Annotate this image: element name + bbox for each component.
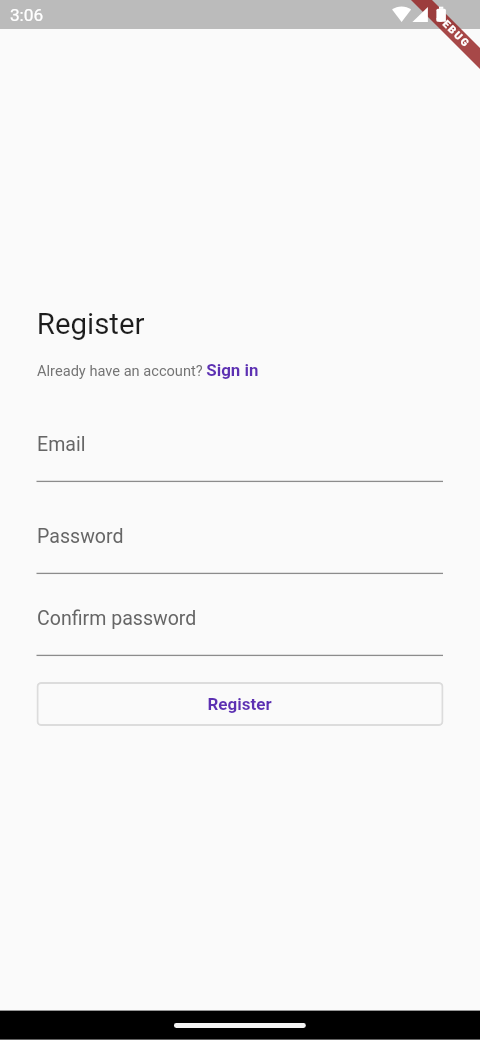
- staticText: DEBUG: [435, 11, 473, 50]
- staticText: Password: [37, 525, 124, 548]
- staticText: Already have an account? Sign in: [37, 360, 259, 380]
- button[interactable]: Confirm password: [36, 599, 443, 661]
- staticText: Register: [207, 694, 272, 714]
- staticText: Email: [37, 433, 86, 456]
- staticText: Register: [37, 306, 145, 340]
- staticText: Confirm password: [37, 607, 197, 630]
- button[interactable]: Password: [36, 517, 443, 579]
- button[interactable]: Register: [36, 682, 443, 726]
- button[interactable]: Email: [36, 425, 443, 487]
- staticText: 3:06: [10, 5, 44, 25]
- button[interactable]: Sign in: [205, 360, 260, 380]
